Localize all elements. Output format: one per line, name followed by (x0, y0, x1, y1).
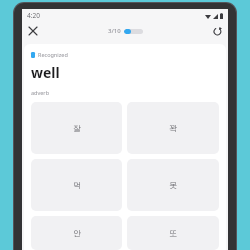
staticText: well (31, 63, 60, 82)
button[interactable]: 꽉 (127, 102, 219, 154)
staticText: 또 (169, 228, 177, 238)
staticText: 꽉 (169, 123, 177, 133)
button[interactable]: 못 (127, 159, 219, 211)
staticText: 잘 (73, 123, 81, 133)
staticText: 4:20 (27, 11, 40, 20)
staticText: 3/10 (108, 27, 121, 35)
button[interactable]: 안 (31, 216, 122, 250)
staticText: 못 (169, 180, 177, 190)
button[interactable]: 먹 (31, 159, 122, 211)
button[interactable]: 또 (127, 216, 219, 250)
button[interactable]: Close (25, 23, 41, 39)
staticText: adverb (31, 89, 50, 96)
staticText: Recognized (38, 51, 68, 58)
staticText: 먹 (73, 180, 81, 190)
button[interactable]: 잘 (31, 102, 122, 154)
staticText: 안 (73, 228, 81, 238)
button[interactable]: Refresh (209, 23, 225, 39)
